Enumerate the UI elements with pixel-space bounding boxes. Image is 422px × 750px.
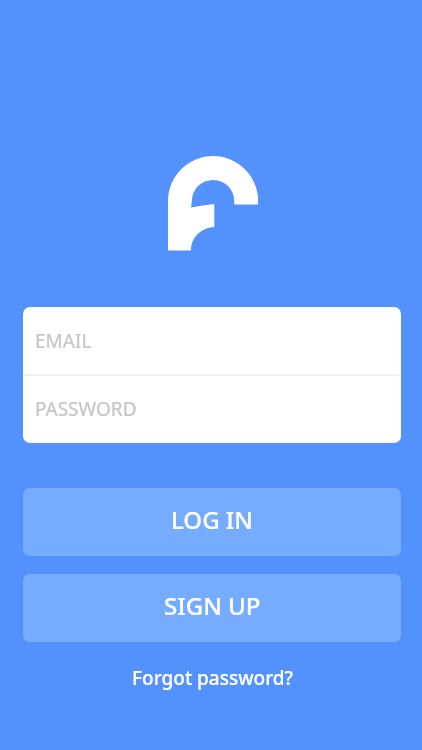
staticText: LOG IN (171, 503, 253, 536)
other: App logo (168, 156, 258, 251)
button[interactable]: PASSWORD (23, 376, 401, 443)
staticText: EMAIL (35, 328, 92, 354)
button[interactable]: LOG IN (23, 488, 401, 556)
staticText: SIGN UP (164, 589, 261, 622)
button[interactable]: EMAIL (23, 307, 401, 374)
staticText: Forgot password? (132, 665, 294, 691)
staticText: PASSWORD (35, 396, 137, 422)
button[interactable]: SIGN UP (23, 574, 401, 642)
button[interactable]: Forgot password? (118, 655, 304, 693)
